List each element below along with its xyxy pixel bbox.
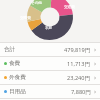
button[interactable]: 食費 (0, 57, 100, 70)
staticText: 外食費 (9, 74, 26, 81)
staticText: 食費 (9, 60, 21, 67)
staticText: 合計 (4, 46, 16, 53)
other: Open 外食費 (93, 76, 97, 80)
staticText: 衣服 (45, 26, 53, 31)
staticText: 479,819円 (64, 46, 91, 54)
staticText: 7,880円 (71, 88, 91, 96)
staticText: 交際費 (20, 16, 31, 21)
staticText: 11,713円 (67, 60, 91, 68)
staticText: 日用品 (9, 88, 26, 95)
other: Open 食費 (93, 62, 97, 66)
other: Open 日用品 (93, 90, 97, 94)
other: Open 合計 (93, 48, 97, 52)
staticText: 23,240円 (67, 74, 91, 82)
staticText: 交通費 (64, 5, 75, 10)
button[interactable]: 合計 (0, 43, 100, 56)
button[interactable]: 日用品 (0, 85, 100, 98)
staticText: その他 (31, 1, 42, 6)
button[interactable]: 外食費 (0, 71, 100, 84)
